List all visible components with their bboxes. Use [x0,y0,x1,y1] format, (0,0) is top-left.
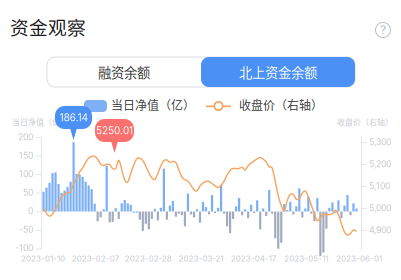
staticText: 2023-06-01 [336,254,382,263]
staticText: 5,200 [369,159,391,169]
staticText: -50 [19,224,33,235]
staticText: 200 [18,132,33,142]
staticText: 2023-01-10 [21,254,65,263]
button[interactable]: 北上资金余额 [201,57,355,87]
staticText: 186.14 [59,111,87,124]
staticText: 4,900 [369,225,391,235]
staticText: 收盘价（右轴） [239,96,323,113]
staticText: 2023-02-07 [72,254,120,263]
staticText: 5250.01 [96,124,133,137]
staticText: 2023-04-17 [231,254,277,263]
staticText: 5,300 [369,137,391,147]
staticText: 2023-02-28 [125,254,172,263]
button[interactable]: Help [371,18,395,42]
staticText: -100 [15,243,33,253]
staticText: 当日净值（亿） [12,116,68,128]
staticText: 资金观察 [10,13,86,40]
staticText: 2023-05-11 [284,254,328,263]
staticText: 50 [23,187,33,198]
staticText: ? [380,23,386,37]
staticText: 收盘价（右轴） [337,116,393,128]
staticText: 5,000 [369,203,391,213]
staticText: 150 [19,150,33,161]
staticText: 当日净值（亿） [111,96,195,113]
staticText: 北上资金余额 [239,62,317,82]
staticText: 2023-03-21 [178,254,223,263]
staticText: 0 [28,206,33,216]
staticText: 5,100 [369,181,390,191]
button[interactable]: 融资余额 [47,57,201,87]
staticText: 融资余额 [98,62,150,82]
staticText: 100 [19,169,33,179]
